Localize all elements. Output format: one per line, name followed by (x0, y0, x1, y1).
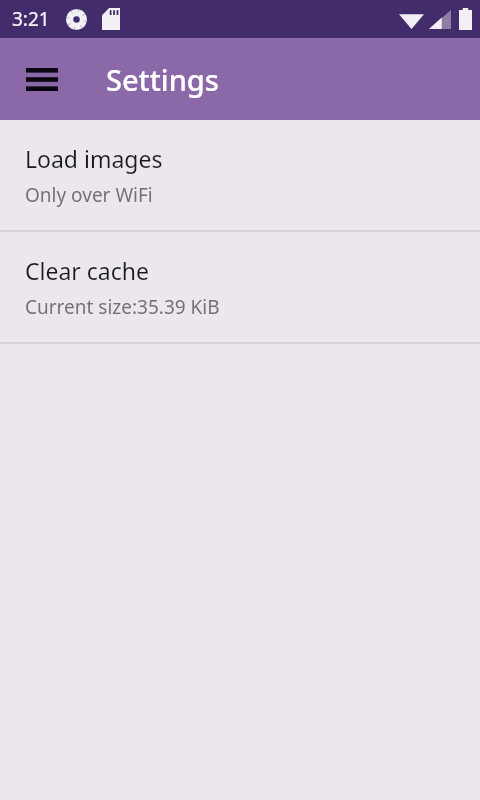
button[interactable]: Load images (0, 120, 480, 230)
button[interactable]: Open navigation menu (14, 51, 70, 107)
staticText: Load images (25, 143, 163, 174)
staticText: Only over WiFi (25, 182, 153, 208)
staticText: Clear cache (25, 255, 149, 286)
staticText: Current size:35.39 KiB (25, 294, 220, 320)
staticText: Settings (106, 60, 219, 99)
staticText: 3:21 (12, 6, 50, 32)
button[interactable]: Clear cache (0, 232, 480, 342)
